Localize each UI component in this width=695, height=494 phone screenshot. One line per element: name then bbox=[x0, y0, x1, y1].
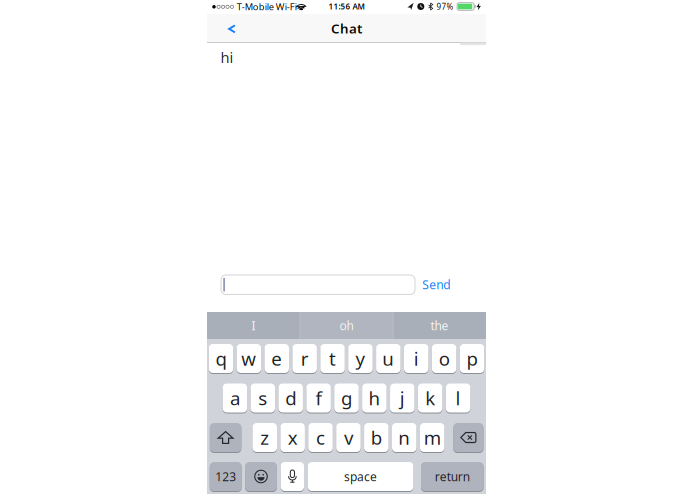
staticText: r bbox=[301, 346, 309, 371]
button[interactable]: c bbox=[308, 423, 333, 453]
button[interactable]: y bbox=[348, 344, 373, 374]
button[interactable]: 123 bbox=[210, 462, 242, 492]
staticText: f bbox=[316, 386, 322, 410]
button[interactable]: a bbox=[223, 383, 247, 413]
staticText: space bbox=[344, 468, 377, 484]
button[interactable]: q bbox=[209, 344, 233, 374]
button[interactable]: Send bbox=[422, 276, 450, 292]
button[interactable]: t bbox=[320, 344, 345, 374]
button[interactable]: m bbox=[420, 423, 444, 453]
button[interactable] bbox=[210, 423, 241, 453]
staticText: k bbox=[425, 386, 435, 410]
button[interactable] bbox=[281, 462, 304, 492]
staticText: the bbox=[430, 317, 448, 333]
staticText: p bbox=[466, 346, 477, 371]
staticText: i bbox=[414, 346, 419, 371]
button[interactable]: e bbox=[264, 344, 289, 374]
button[interactable]: x bbox=[280, 423, 305, 453]
button[interactable]: r bbox=[292, 344, 317, 374]
button[interactable] bbox=[228, 24, 237, 33]
staticText: e bbox=[271, 346, 282, 371]
staticText: c bbox=[316, 425, 325, 450]
button[interactable] bbox=[453, 423, 483, 453]
button[interactable]: the bbox=[393, 312, 485, 339]
staticText: v bbox=[344, 425, 353, 450]
staticText: T-Mobile Wi-Fi bbox=[237, 0, 297, 13]
staticText: Chat bbox=[331, 19, 362, 37]
staticText: g bbox=[341, 386, 352, 410]
button[interactable]: g bbox=[334, 383, 359, 413]
button[interactable]: I bbox=[207, 312, 299, 339]
button[interactable]: b bbox=[364, 423, 389, 453]
button[interactable]: u bbox=[376, 344, 401, 374]
staticText: oh bbox=[339, 317, 353, 333]
staticText: h bbox=[368, 386, 380, 410]
button[interactable]: p bbox=[460, 344, 484, 374]
button[interactable]: z bbox=[252, 423, 277, 453]
staticText: 11:56 AM bbox=[328, 1, 364, 12]
staticText: return bbox=[435, 468, 470, 484]
staticText: y bbox=[355, 346, 365, 371]
staticText: j bbox=[400, 386, 405, 410]
staticText: b bbox=[371, 425, 382, 450]
button[interactable]: return bbox=[421, 462, 484, 492]
staticText: u bbox=[382, 346, 394, 371]
button[interactable]: f bbox=[306, 383, 331, 413]
button[interactable]: v bbox=[336, 423, 361, 453]
button[interactable]: h bbox=[362, 383, 387, 413]
staticText: n bbox=[398, 425, 410, 450]
button[interactable]: space bbox=[308, 462, 413, 492]
staticText: 97% bbox=[437, 1, 454, 12]
button[interactable]: oh bbox=[300, 312, 392, 339]
staticText: s bbox=[258, 386, 267, 410]
button[interactable]: o bbox=[432, 344, 456, 374]
staticText: d bbox=[285, 386, 296, 410]
staticText: hi bbox=[221, 48, 234, 67]
button[interactable]: k bbox=[418, 383, 442, 413]
button[interactable]: s bbox=[251, 383, 275, 413]
staticText: I bbox=[251, 317, 255, 333]
staticText: t bbox=[329, 346, 336, 371]
button[interactable] bbox=[221, 275, 415, 294]
button[interactable]: n bbox=[392, 423, 416, 453]
button[interactable]: l bbox=[446, 383, 470, 413]
staticText: Send bbox=[422, 276, 450, 292]
button[interactable]: w bbox=[237, 344, 261, 374]
button[interactable]: j bbox=[390, 383, 414, 413]
staticText: 123 bbox=[215, 468, 236, 484]
button[interactable]: d bbox=[278, 383, 303, 413]
staticText: x bbox=[288, 425, 298, 450]
staticText: z bbox=[260, 425, 269, 450]
button[interactable] bbox=[245, 462, 277, 492]
staticText: m bbox=[424, 425, 441, 450]
staticText: q bbox=[215, 346, 226, 371]
staticText: a bbox=[230, 386, 240, 410]
staticText: w bbox=[241, 346, 256, 371]
button[interactable]: i bbox=[404, 344, 428, 374]
staticText: l bbox=[456, 386, 461, 410]
staticText: o bbox=[439, 346, 450, 371]
